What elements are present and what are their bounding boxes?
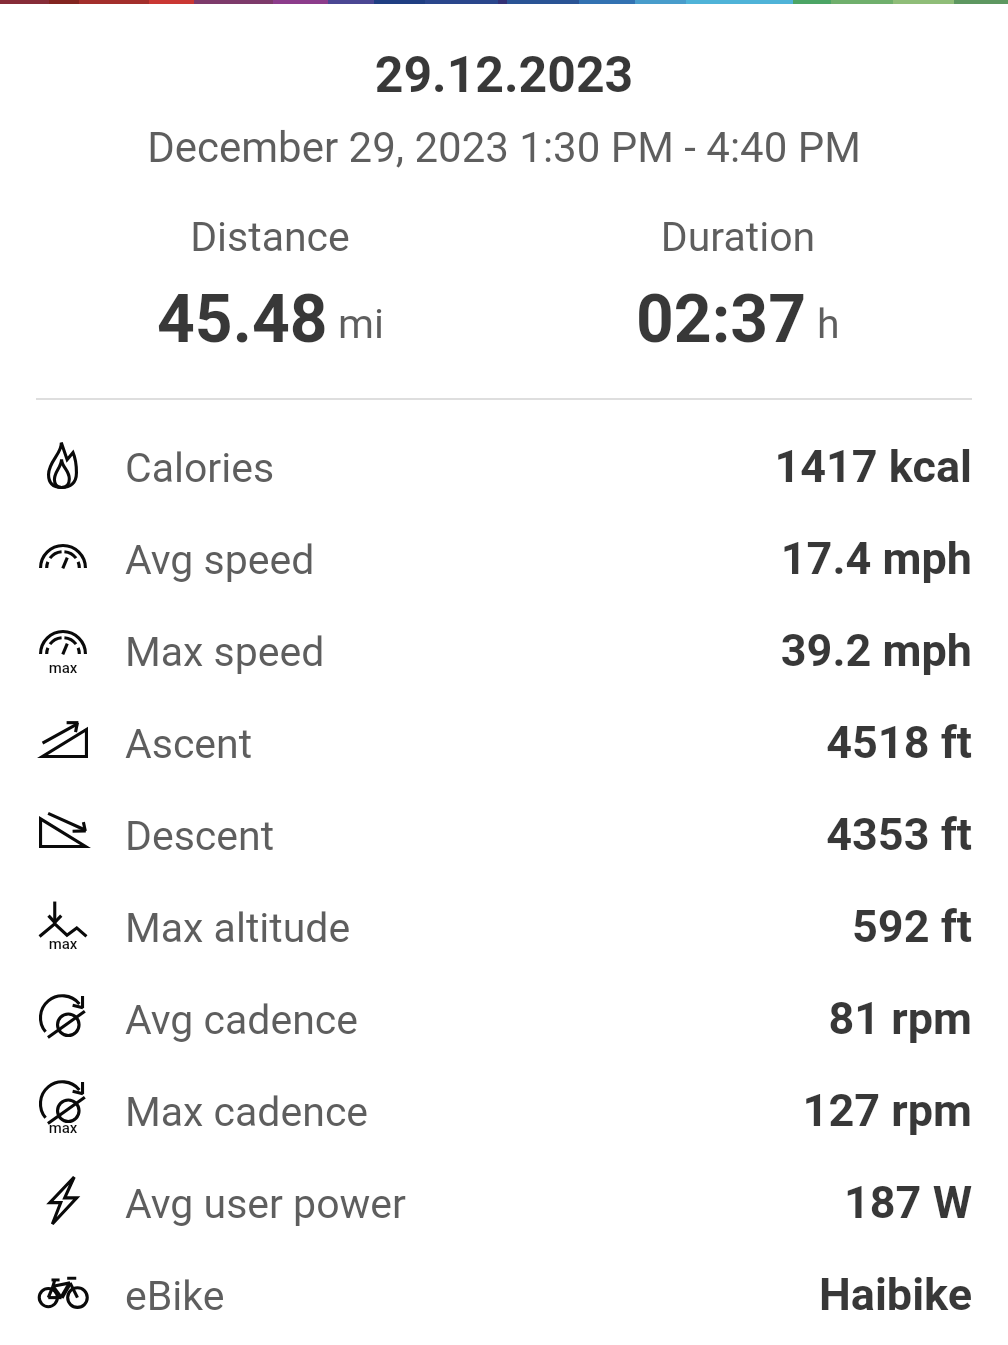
staticText: Calories	[125, 444, 275, 492]
staticText: 81 rpm	[0, 992, 972, 1045]
button[interactable]: Calories 1417 kcal	[0, 419, 1008, 511]
staticText: Max speed	[125, 628, 325, 676]
staticText: Avg speed	[125, 536, 315, 584]
button[interactable]: Max altitude 592 ft	[0, 879, 1008, 971]
staticText: max	[0, 1119, 126, 1137]
staticText: Ascent	[125, 720, 253, 768]
staticText: 592 ft	[0, 900, 972, 953]
button[interactable]: Avg user power 187 W	[0, 1155, 1008, 1247]
staticText: mi	[338, 300, 384, 348]
staticText: Descent	[125, 812, 275, 860]
staticText: 39.2 mph	[0, 624, 972, 677]
staticText: Duration	[504, 213, 972, 261]
button[interactable]: eBike Haibike	[0, 1247, 1008, 1339]
staticText: 02:37	[636, 281, 807, 358]
button[interactable]: Max cadence 127 rpm	[0, 1063, 1008, 1155]
button[interactable]: Avg cadence 81 rpm	[0, 971, 1008, 1063]
staticText: 4353 ft	[0, 808, 972, 861]
staticText: Avg user power	[125, 1180, 406, 1228]
button[interactable]: Ascent 4518 ft	[0, 695, 1008, 787]
staticText: Haibike	[0, 1268, 972, 1321]
staticText: Max cadence	[125, 1088, 369, 1136]
button[interactable]: Descent 4353 ft	[0, 787, 1008, 879]
staticText: max	[0, 659, 126, 677]
staticText: 187 W	[0, 1176, 972, 1229]
staticText: 127 rpm	[0, 1084, 972, 1137]
button[interactable]: Avg speed 17.4 mph	[0, 511, 1008, 603]
staticText: h	[817, 300, 840, 348]
staticText: eBike	[125, 1272, 225, 1320]
staticText: Avg cadence	[125, 996, 359, 1044]
staticText: 4518 ft	[0, 716, 972, 769]
staticText: Max altitude	[125, 904, 351, 952]
staticText: 17.4 mph	[0, 532, 972, 585]
staticText: Distance	[36, 213, 504, 261]
staticText: 29.12.2023	[0, 46, 1008, 105]
button[interactable]: Max speed 39.2 mph	[0, 603, 1008, 695]
staticText: December 29, 2023 1:30 PM - 4:40 PM	[0, 123, 1008, 172]
staticText: 45.48	[157, 281, 328, 358]
staticText: max	[0, 935, 126, 953]
staticText: 1417 kcal	[0, 440, 972, 493]
